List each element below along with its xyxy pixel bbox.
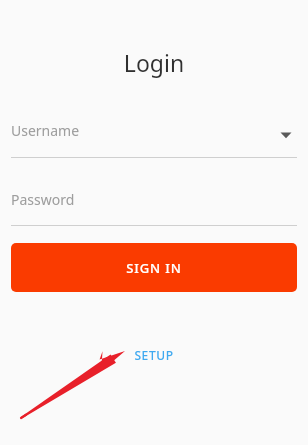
button[interactable]: Username [0,112,308,158]
button[interactable]: Password [0,181,308,226]
staticText: SETUP [134,347,174,363]
button[interactable]: SETUP [128,344,180,366]
staticText: Username [11,121,80,140]
button[interactable]: SIGN IN [11,243,297,292]
staticText: Login [0,47,308,78]
staticText: Password [11,190,75,209]
staticText: SIGN IN [126,259,182,277]
other: Show username suggestions [280,129,292,141]
